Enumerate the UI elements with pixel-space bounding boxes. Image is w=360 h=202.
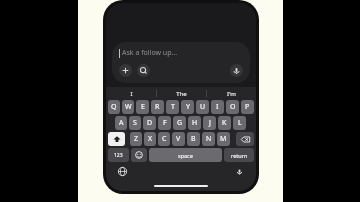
- staticText: T: [171, 102, 175, 112]
- button[interactable]: F: [158, 116, 171, 130]
- button[interactable]: Voice input: [230, 64, 243, 77]
- staticText: return: [231, 152, 248, 159]
- button[interactable]: Y: [181, 100, 194, 114]
- button[interactable]: W: [122, 100, 134, 114]
- button[interactable]: J: [203, 116, 216, 130]
- staticText: V: [176, 134, 181, 144]
- staticText: S: [133, 118, 137, 128]
- button[interactable]: V: [172, 132, 185, 146]
- button[interactable]: E: [136, 100, 149, 114]
- staticText: U: [200, 102, 206, 112]
- staticText: W: [125, 102, 132, 112]
- staticText: E: [141, 102, 145, 112]
- button[interactable]: Add attachment: [119, 64, 132, 77]
- staticText: space: [178, 152, 193, 159]
- button[interactable]: T: [166, 100, 179, 114]
- staticText: Q: [111, 102, 117, 112]
- button[interactable]: C: [158, 132, 170, 146]
- staticText: 123: [114, 152, 123, 159]
- staticText: N: [206, 134, 212, 144]
- staticText: I: [216, 102, 219, 112]
- button[interactable]: S: [129, 116, 141, 130]
- button[interactable]: I: [211, 100, 224, 114]
- staticText: P: [245, 102, 250, 112]
- staticText: C: [162, 134, 167, 144]
- button[interactable]: O: [226, 100, 239, 114]
- staticText: H: [192, 118, 198, 128]
- staticText: K: [222, 118, 227, 128]
- staticText: Z: [134, 134, 139, 144]
- button[interactable]: K: [218, 116, 231, 130]
- staticText: J: [209, 118, 211, 128]
- staticText: G: [177, 118, 183, 128]
- staticText: A: [119, 118, 124, 128]
- button[interactable]: N: [202, 132, 215, 146]
- button[interactable]: G: [173, 116, 186, 130]
- staticText: D: [147, 118, 153, 128]
- staticText: Ask a follow up...: [122, 48, 178, 58]
- button[interactable]: P: [241, 100, 254, 114]
- button[interactable]: The: [157, 87, 206, 100]
- staticText: B: [191, 134, 196, 144]
- button[interactable]: Change keyboard language: [116, 165, 129, 178]
- button[interactable]: Emoji: [131, 148, 147, 162]
- staticText: F: [163, 118, 167, 128]
- button[interactable]: B: [187, 132, 200, 146]
- button[interactable]: I'm: [207, 87, 256, 100]
- staticText: R: [155, 102, 160, 112]
- button[interactable]: 123: [108, 148, 129, 162]
- staticText: L: [238, 118, 242, 128]
- button[interactable]: Shift: [108, 132, 125, 146]
- button[interactable]: return: [224, 148, 254, 162]
- button[interactable]: A: [115, 116, 127, 130]
- button[interactable]: Search: [137, 64, 150, 77]
- staticText: Y: [186, 102, 190, 112]
- button[interactable]: Backspace: [236, 132, 254, 146]
- staticText: I: [130, 90, 133, 98]
- button[interactable]: R: [151, 100, 164, 114]
- staticText: M: [220, 134, 227, 144]
- button[interactable]: L: [233, 116, 246, 130]
- button[interactable]: Q: [108, 100, 120, 114]
- staticText: X: [148, 134, 153, 144]
- staticText: I'm: [227, 90, 236, 98]
- button[interactable]: space: [149, 148, 222, 162]
- staticText: O: [230, 102, 236, 112]
- button[interactable]: D: [143, 116, 156, 130]
- staticText: The: [176, 90, 187, 98]
- button[interactable]: I: [106, 87, 156, 100]
- button[interactable]: Z: [130, 132, 142, 146]
- button[interactable]: H: [188, 116, 201, 130]
- button[interactable]: X: [144, 132, 156, 146]
- button[interactable]: U: [196, 100, 209, 114]
- button[interactable]: M: [217, 132, 230, 146]
- button[interactable]: Dictation: [233, 165, 246, 178]
